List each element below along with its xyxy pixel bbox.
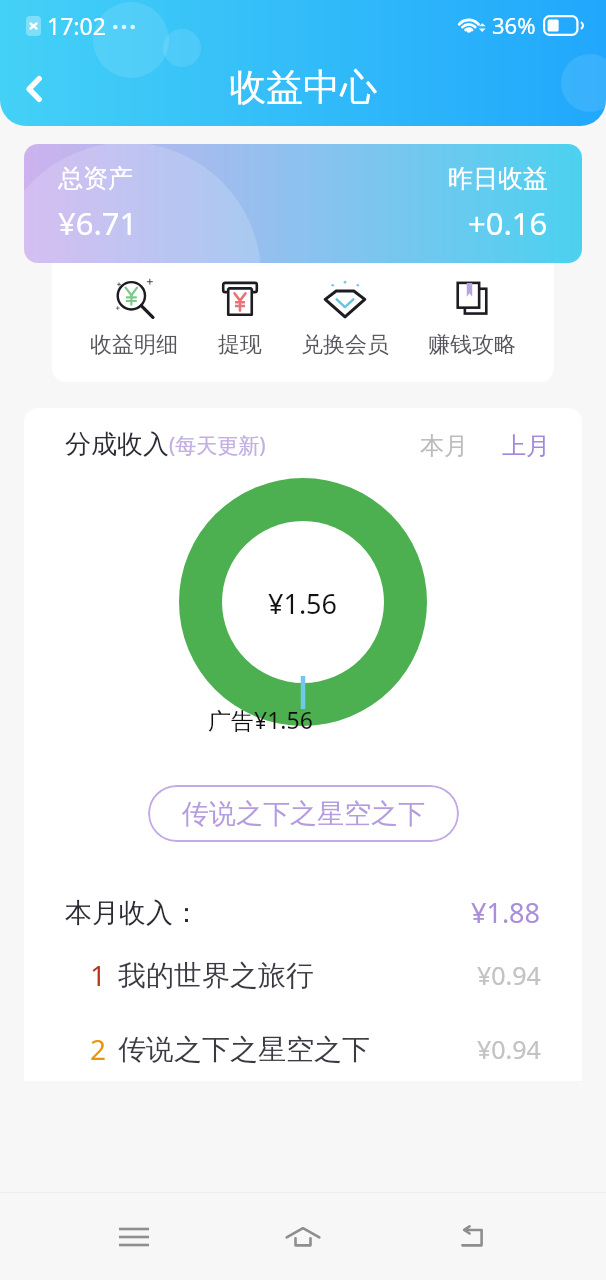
staticText: ¥1.88 bbox=[471, 894, 541, 931]
button[interactable]: 传说之下之星空之下 bbox=[148, 785, 459, 842]
staticText: 广告¥1.56 bbox=[208, 704, 313, 735]
staticText: 本月收入： bbox=[65, 896, 200, 930]
button[interactable]: 1 bbox=[24, 955, 582, 995]
staticText: (每天更新) bbox=[169, 431, 266, 460]
button[interactable]: 赚钱攻略 bbox=[428, 263, 516, 382]
staticText: 收益明细 bbox=[90, 331, 178, 359]
staticText: 提现 bbox=[218, 331, 262, 359]
staticText: 赚钱攻略 bbox=[428, 331, 516, 359]
button[interactable]: 收益明细 bbox=[90, 263, 178, 382]
button[interactable]: Back bbox=[8, 63, 60, 115]
staticText: +0.16 bbox=[468, 202, 548, 244]
button[interactable]: 2 bbox=[24, 1029, 582, 1069]
staticText: 2 bbox=[90, 1030, 107, 1068]
staticText: 昨日收益 bbox=[448, 163, 548, 194]
staticText: ¥6.71 bbox=[58, 202, 138, 244]
button[interactable]: 上月 bbox=[494, 426, 558, 466]
button[interactable]: Back bbox=[437, 1202, 507, 1272]
staticText: 传说之下之星空之下 bbox=[182, 797, 425, 831]
button[interactable]: 本月 bbox=[412, 426, 476, 466]
button[interactable]: 总资产 bbox=[24, 144, 582, 263]
staticText: 总资产 bbox=[58, 163, 133, 194]
staticText: 36% bbox=[492, 10, 536, 40]
button[interactable]: 提现 bbox=[217, 263, 263, 382]
staticText: ¥0.94 bbox=[477, 958, 541, 992]
staticText: 17:02 bbox=[47, 10, 106, 41]
button[interactable]: 兑换会员 bbox=[301, 263, 389, 382]
staticText: 兑换会员 bbox=[301, 331, 389, 359]
staticText: 分成收入 bbox=[65, 428, 169, 461]
staticText: ¥1.56 bbox=[268, 585, 338, 622]
staticText: ¥0.94 bbox=[477, 1032, 541, 1066]
staticText: 收益中心 bbox=[229, 64, 377, 111]
staticText: 1 bbox=[90, 956, 107, 994]
staticText: 传说之下之星空之下 bbox=[118, 1032, 370, 1067]
staticText: 本月 bbox=[420, 431, 468, 461]
button[interactable]: Recent apps bbox=[99, 1202, 169, 1272]
staticText: 上月 bbox=[502, 431, 550, 461]
button[interactable]: Home bbox=[268, 1202, 338, 1272]
staticText: 我的世界之旅行 bbox=[118, 958, 314, 993]
